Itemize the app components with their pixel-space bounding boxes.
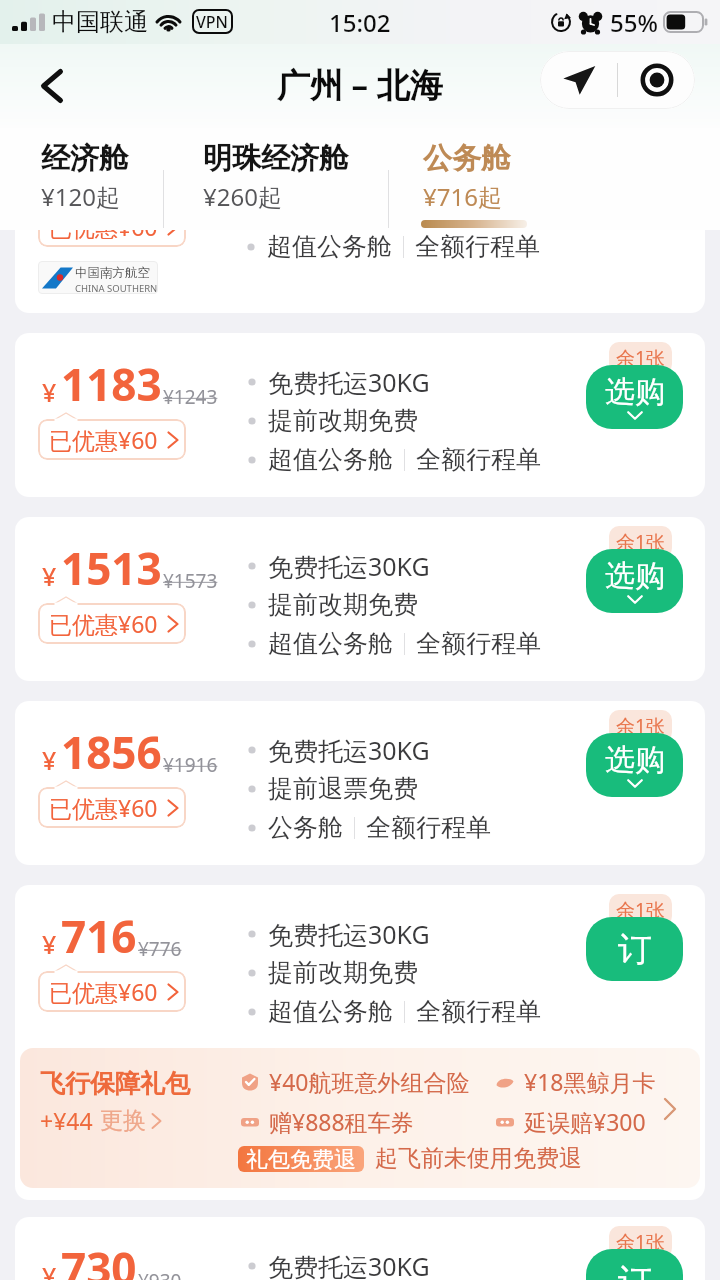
staticText: 全额行程单 xyxy=(416,628,541,659)
staticText: 已优惠¥60 xyxy=(49,211,158,242)
staticText: 全额行程单 xyxy=(416,996,541,1027)
staticText: 提前改期免费 xyxy=(267,192,417,223)
staticText: ¥1916 xyxy=(163,752,218,778)
button[interactable]: 已优惠¥60 xyxy=(38,964,186,1011)
staticText: ¥ xyxy=(42,927,57,961)
staticText: 订 xyxy=(618,1260,652,1280)
button[interactable]: ¥ xyxy=(15,885,705,1200)
staticText: 赠¥888租车券 xyxy=(269,1106,414,1137)
button[interactable]: 已优惠¥60 xyxy=(38,780,186,827)
staticText: 已优惠¥60 xyxy=(49,976,158,1007)
staticText: ¥18黑鲸月卡 xyxy=(524,1066,656,1097)
button[interactable]: ¥ xyxy=(15,1217,705,1280)
staticText: 免费托运30KG xyxy=(268,365,430,399)
staticText: ¥776 xyxy=(138,936,182,962)
staticText: 选购 xyxy=(605,373,665,411)
button[interactable]: 已优惠¥60 xyxy=(38,412,186,459)
staticText: 716 xyxy=(61,906,137,966)
staticText: ¥ xyxy=(42,1259,57,1280)
staticText: 飞行保障礼包 xyxy=(40,1068,190,1099)
staticText: 广州 – 北海 xyxy=(277,62,443,107)
staticText: 延误赔¥300 xyxy=(524,1106,646,1137)
staticText: 超值公务舱 xyxy=(268,444,393,475)
staticText: 55% xyxy=(610,6,658,39)
staticText: 余1张 xyxy=(616,345,665,371)
button[interactable]: More gift package options xyxy=(658,1090,684,1128)
staticText: 1183 xyxy=(61,354,162,414)
staticText: 公务舱 xyxy=(423,140,510,177)
staticText: ¥40航班意外组合险 xyxy=(269,1066,470,1097)
button[interactable]: 选购 xyxy=(586,549,683,613)
button[interactable]: ¥ xyxy=(15,333,705,497)
staticText: ¥ xyxy=(42,743,57,777)
staticText: 中国南方航空 xyxy=(75,265,150,281)
staticText: 选购 xyxy=(605,557,665,595)
staticText: 已优惠¥60 xyxy=(49,792,158,823)
staticText: 余1张 xyxy=(616,897,665,923)
button[interactable]: 经济舱 xyxy=(41,128,128,230)
staticText: ¥260起 xyxy=(203,180,282,213)
button[interactable]: Record xyxy=(618,51,695,109)
button[interactable]: Back xyxy=(20,44,84,128)
staticText: 免费托运30KG xyxy=(268,549,430,583)
staticText: 15:02 xyxy=(329,6,391,39)
button[interactable]: 订 xyxy=(586,1249,683,1280)
staticText: 全额行程单 xyxy=(415,231,540,262)
staticText: +¥44 xyxy=(40,1105,93,1136)
staticText: 免费托运30KG xyxy=(267,152,429,186)
staticText: CHINA SOUTHERN xyxy=(75,282,158,294)
staticText: VPN xyxy=(196,11,229,33)
staticText: ¥930 xyxy=(138,1268,182,1280)
staticText: ¥1243 xyxy=(163,384,218,410)
button[interactable]: 选购 xyxy=(586,733,683,797)
staticText: 超值公务舱 xyxy=(268,996,393,1027)
staticText: 订 xyxy=(618,928,652,971)
staticText: 提前改期免费 xyxy=(268,957,418,988)
staticText: 全额行程单 xyxy=(366,812,491,843)
button[interactable]: 明珠经济舱 xyxy=(203,128,348,230)
staticText: 余1张 xyxy=(616,529,665,555)
staticText: ¥ xyxy=(42,375,57,409)
staticText: 1856 xyxy=(61,722,162,782)
staticText: 礼包免费退 xyxy=(246,1146,356,1172)
staticText: 免费托运30KG xyxy=(268,733,430,767)
staticText: ¥716起 xyxy=(423,180,502,213)
staticText: ¥ xyxy=(42,559,57,593)
staticText: 明珠经济舱 xyxy=(203,140,348,177)
staticText: ¥120起 xyxy=(41,180,120,213)
staticText: 免费托运30KG xyxy=(268,1249,430,1280)
button[interactable]: 已优惠¥60 xyxy=(38,199,186,246)
button[interactable]: 飞行保障礼包 xyxy=(20,1048,700,1188)
staticText: 提前退票免费 xyxy=(268,773,418,804)
button[interactable]: ¥ xyxy=(15,701,705,865)
staticText: 经济舱 xyxy=(41,140,128,177)
staticText: 更换 xyxy=(100,1106,146,1135)
staticText: 超值公务舱 xyxy=(267,231,392,262)
staticText: 余1张 xyxy=(616,713,665,739)
button[interactable]: Navigate xyxy=(540,51,617,109)
staticText: 起飞前未使用免费退 xyxy=(375,1144,582,1173)
button[interactable]: 选购 xyxy=(586,365,683,429)
staticText: 中国联通 xyxy=(52,7,148,37)
button[interactable]: 已优惠¥60 xyxy=(38,596,186,643)
staticText: 全额行程单 xyxy=(416,444,541,475)
button[interactable]: 订 xyxy=(586,917,683,981)
button[interactable]: 公务舱 xyxy=(423,128,529,230)
button[interactable]: ¥ xyxy=(15,517,705,681)
staticText: 公务舱 xyxy=(268,812,343,843)
button[interactable]: 已优惠¥60 xyxy=(15,123,705,313)
staticText: 提前改期免费 xyxy=(268,405,418,436)
staticText: 730 xyxy=(61,1238,137,1280)
staticText: 1513 xyxy=(61,538,162,598)
staticText: 超值公务舱 xyxy=(268,628,393,659)
staticText: 已优惠¥60 xyxy=(49,608,158,639)
staticText: 免费托运30KG xyxy=(268,917,430,951)
staticText: 选购 xyxy=(605,741,665,779)
staticText: 余1张 xyxy=(616,1229,665,1255)
staticText: 已优惠¥60 xyxy=(49,424,158,455)
staticText: ¥1573 xyxy=(163,568,218,594)
staticText: 提前改期免费 xyxy=(268,589,418,620)
